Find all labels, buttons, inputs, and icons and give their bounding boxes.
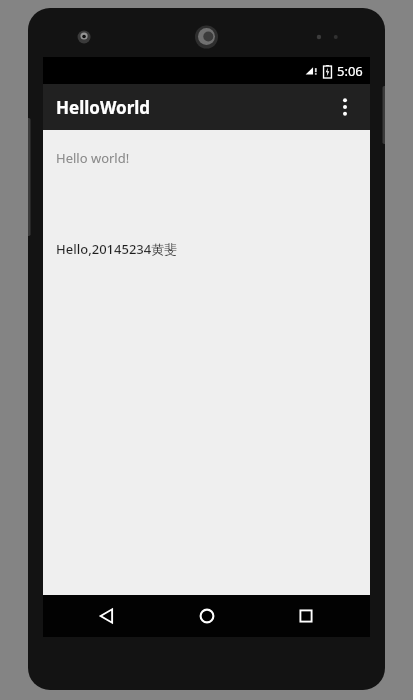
staticText: HelloWorld	[56, 96, 151, 119]
button[interactable]: Back	[72, 595, 142, 637]
staticText: Hello world!	[56, 149, 130, 167]
button[interactable]: Home	[172, 595, 242, 637]
staticText: Hello,20145234黄斐	[56, 240, 178, 258]
staticText: 5:06	[337, 62, 363, 80]
button[interactable]: Recent apps	[271, 595, 341, 637]
button[interactable]: More options	[328, 90, 362, 124]
